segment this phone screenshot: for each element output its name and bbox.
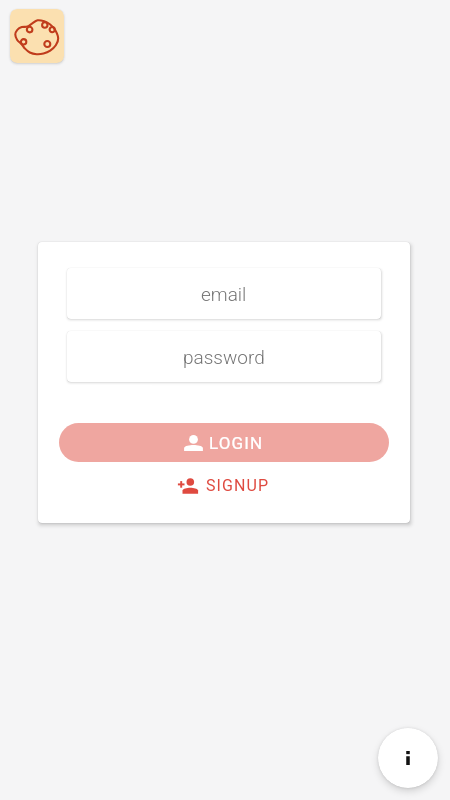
button[interactable]: email: [67, 268, 381, 319]
button[interactable]: SIGNUP: [168, 470, 280, 501]
button[interactable]: password: [67, 331, 381, 382]
button[interactable]: Info: [378, 728, 438, 788]
button[interactable]: LOGIN: [59, 423, 389, 462]
staticText: email: [201, 283, 247, 305]
staticText: password: [183, 346, 265, 368]
button[interactable]: App logo: [10, 9, 64, 63]
staticText: LOGIN: [209, 433, 264, 453]
staticText: SIGNUP: [206, 476, 270, 495]
